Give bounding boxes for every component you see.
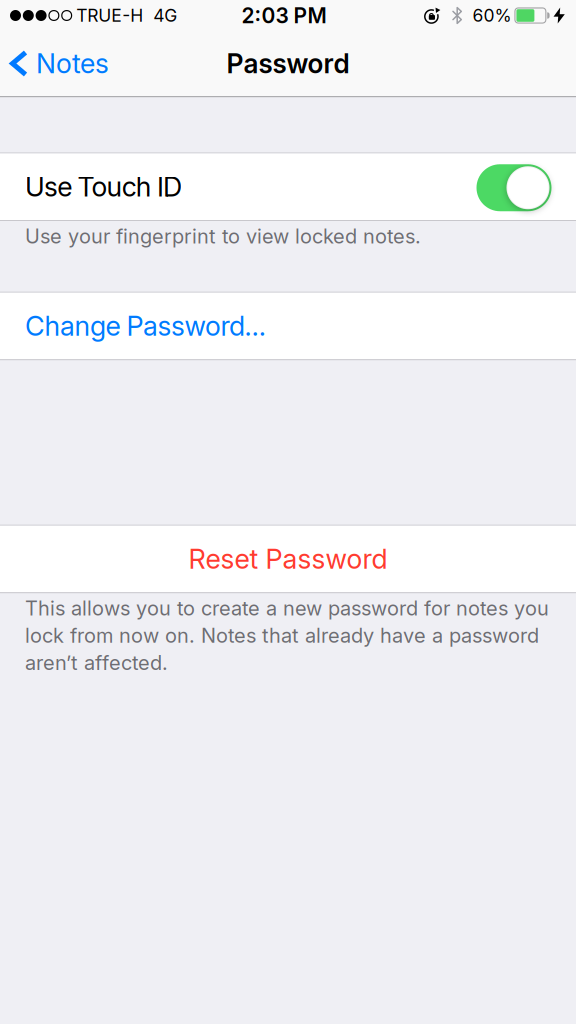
staticText: Notes <box>36 47 109 80</box>
staticText: 2:03 PM <box>241 3 326 28</box>
button[interactable]: Use Touch ID <box>476 163 551 210</box>
button[interactable]: Reset Password <box>0 525 576 593</box>
staticText: Change Password… <box>25 310 265 342</box>
staticText: lock from now on. Notes that already hav… <box>25 623 539 648</box>
staticText: Reset Password <box>188 543 387 575</box>
staticText: This allows you to create a new password… <box>25 596 549 620</box>
button[interactable]: Change Password… <box>0 292 576 360</box>
staticText: 60% <box>472 5 511 26</box>
button[interactable]: Notes <box>0 47 109 80</box>
staticText: Use your fingerprint to view locked note… <box>25 224 421 248</box>
staticText: aren’t affected. <box>25 651 168 675</box>
staticText: TRUE-H <box>76 5 143 26</box>
staticText: Use Touch ID <box>25 170 182 203</box>
staticText: 4G <box>153 5 177 26</box>
staticText: Password <box>226 47 349 80</box>
